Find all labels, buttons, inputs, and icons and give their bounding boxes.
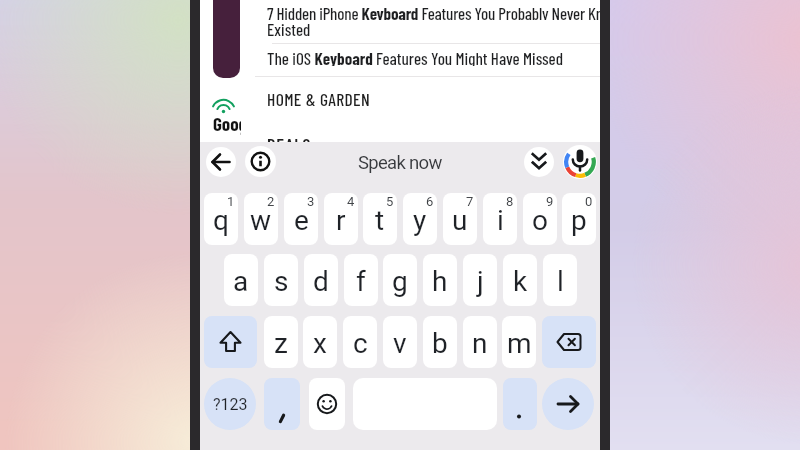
button[interactable]: HOME & GARDEN <box>267 88 371 109</box>
staticText: f <box>356 265 366 298</box>
staticText: t <box>375 204 385 237</box>
staticText: 1 <box>227 194 235 209</box>
staticText: a <box>233 265 249 298</box>
button[interactable]: b <box>423 316 457 368</box>
staticText: x <box>313 327 327 360</box>
staticText: k <box>513 265 528 298</box>
staticText: w <box>250 204 272 237</box>
staticText: 3 <box>307 194 315 209</box>
button[interactable]: t <box>363 193 397 245</box>
button[interactable]: y <box>403 193 437 245</box>
button[interactable]: a <box>224 254 258 306</box>
staticText: u <box>452 204 468 237</box>
staticText: p <box>571 204 587 237</box>
staticText: d <box>313 265 329 298</box>
staticText: s <box>274 265 289 298</box>
staticText: q <box>213 204 229 237</box>
button[interactable]: u <box>443 193 477 245</box>
staticText: e <box>294 204 309 237</box>
staticText: 5 <box>386 194 394 209</box>
staticText: 7 <box>466 194 474 209</box>
button[interactable]: The iOS Keyboard Features You Might Have… <box>267 48 600 66</box>
button[interactable]: DEALS <box>267 133 312 155</box>
button[interactable] <box>563 145 597 179</box>
button[interactable] <box>204 316 257 368</box>
staticText: 8 <box>506 194 514 209</box>
staticText: g <box>392 265 408 298</box>
staticText: b <box>432 327 448 360</box>
staticText: l <box>557 265 564 298</box>
button[interactable]: o <box>523 193 557 245</box>
staticText: z <box>274 327 288 360</box>
staticText: v <box>393 327 407 360</box>
button[interactable]: ?123 <box>204 378 256 430</box>
button[interactable]: x <box>303 316 337 368</box>
staticText: ?123 <box>213 395 248 414</box>
button[interactable] <box>503 378 537 430</box>
button[interactable]: j <box>463 254 497 306</box>
button[interactable]: w <box>244 193 278 245</box>
button[interactable] <box>524 147 554 177</box>
button[interactable]: 7 Hidden iPhone Keyboard Features You Pr… <box>267 3 600 20</box>
staticText: Existed <box>267 19 311 39</box>
button[interactable]: m <box>502 316 536 368</box>
button[interactable]: k <box>503 254 537 306</box>
button[interactable] <box>309 378 345 430</box>
staticText: 9 <box>546 194 554 209</box>
button[interactable]: z <box>264 316 298 368</box>
staticText: 0 <box>585 194 593 209</box>
button[interactable]: p <box>562 193 596 245</box>
button[interactable]: v <box>383 316 417 368</box>
button[interactable] <box>206 147 236 177</box>
button[interactable] <box>542 316 596 368</box>
button[interactable] <box>213 0 240 78</box>
button[interactable]: r <box>324 193 358 245</box>
staticText: r <box>336 204 346 237</box>
button[interactable]: n <box>463 316 497 368</box>
staticText: Goog <box>213 112 241 135</box>
button[interactable]: e <box>284 193 318 245</box>
button[interactable]: q <box>204 193 238 245</box>
button[interactable]: s <box>264 254 298 306</box>
button[interactable]: h <box>423 254 457 306</box>
staticText: 4 <box>347 194 355 209</box>
button[interactable] <box>542 378 594 430</box>
button[interactable]: i <box>483 193 517 245</box>
button[interactable]: c <box>343 316 377 368</box>
button[interactable]: f <box>344 254 378 306</box>
staticText: o <box>532 204 548 237</box>
staticText: h <box>432 265 448 298</box>
staticText: n <box>472 327 488 360</box>
staticText: 7 Hidden iPhone Keyboard Features You Pr… <box>267 3 600 20</box>
staticText: i <box>497 204 504 237</box>
button[interactable]: d <box>304 254 338 306</box>
button[interactable]: g <box>383 254 417 306</box>
button[interactable]: l <box>543 254 577 306</box>
staticText: 2 <box>267 194 275 209</box>
staticText: c <box>353 327 368 360</box>
button[interactable] <box>245 146 276 177</box>
staticText: y <box>413 204 427 237</box>
staticText: j <box>477 265 484 298</box>
staticText: The iOS Keyboard Features You Might Have… <box>267 48 563 66</box>
staticText: m <box>507 327 532 360</box>
button[interactable] <box>264 378 300 430</box>
staticText: Speak now <box>358 152 442 174</box>
staticText: 6 <box>426 194 434 209</box>
